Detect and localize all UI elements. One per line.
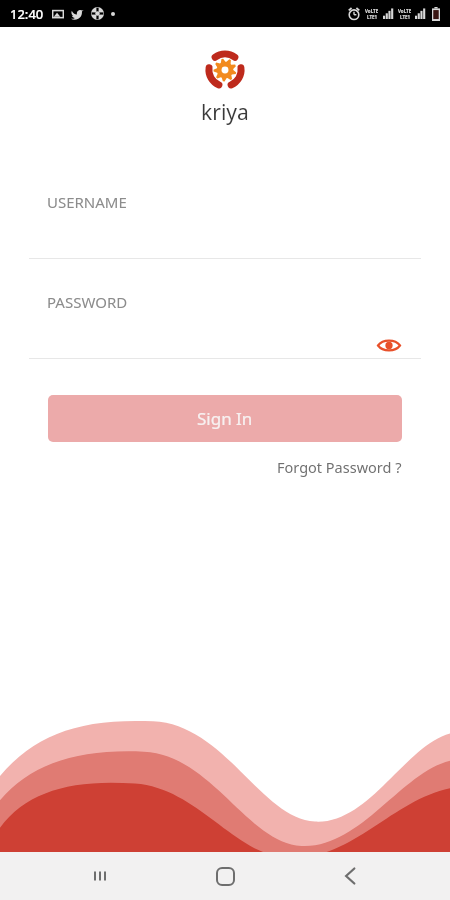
staticText: USERNAME: [47, 192, 127, 212]
staticText: LTE1: [367, 14, 378, 20]
button[interactable]: Home: [201, 852, 249, 900]
staticText: Sign In: [197, 407, 253, 430]
staticText: Forgot Password ?: [277, 457, 402, 477]
staticText: VoLTE: [365, 8, 379, 14]
staticText: VoLTE: [398, 8, 412, 14]
button[interactable]: Sign In: [48, 395, 402, 442]
button[interactable]: Forgot Password ?: [273, 454, 406, 480]
staticText: LTE1: [400, 14, 411, 20]
staticText: PASSWORD: [47, 292, 128, 312]
button[interactable]: Recent apps: [77, 852, 125, 900]
staticText: 12:40: [10, 5, 44, 23]
button[interactable]: Show password: [376, 332, 402, 358]
staticText: kriya: [201, 98, 249, 127]
button[interactable]: Back: [326, 852, 374, 900]
